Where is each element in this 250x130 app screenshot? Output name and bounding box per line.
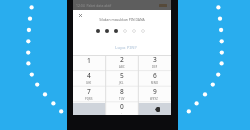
staticText: TUV — [119, 97, 125, 101]
staticText: GHI — [86, 81, 92, 85]
button[interactable]: Lupa PIN? — [112, 44, 140, 52]
staticText: 12:04 Paket data aktif — [76, 3, 112, 8]
staticText: + — [121, 112, 123, 114]
staticText: 9 — [153, 87, 157, 96]
staticText: 7 — [87, 87, 91, 96]
button[interactable]: 5 — [105, 71, 138, 87]
button[interactable]: 3 — [138, 55, 171, 71]
button[interactable]: 2 — [105, 55, 138, 71]
staticText: 8 — [120, 87, 124, 96]
staticText: WXYZ — [150, 97, 159, 101]
button[interactable]: Backspace — [138, 103, 171, 115]
button[interactable]: 6 — [138, 71, 171, 87]
staticText: 3 — [153, 55, 157, 64]
button[interactable]: 9 — [138, 87, 171, 103]
staticText: 5 — [120, 71, 124, 80]
staticText: 2 — [120, 55, 124, 64]
staticText: DEF — [152, 65, 158, 69]
button[interactable]: 0 — [105, 103, 138, 115]
staticText: Lupa PIN? — [115, 45, 137, 51]
button[interactable]: 1 — [73, 55, 105, 71]
button[interactable]: 7 — [73, 87, 105, 103]
button[interactable]: 4 — [73, 71, 105, 87]
staticText: 4 — [87, 71, 91, 80]
staticText: PQRS — [85, 97, 93, 101]
button[interactable]: 8 — [105, 87, 138, 103]
button[interactable]: Close — [76, 11, 85, 20]
staticText: 6 — [153, 71, 157, 80]
staticText: ABC — [119, 65, 125, 69]
staticText: JKL — [119, 81, 124, 85]
staticText: Silakan masukkan PIN DANA — [99, 17, 145, 22]
staticText: 1 — [87, 56, 91, 65]
staticText: 0 — [120, 102, 124, 111]
staticText: MNO — [151, 81, 159, 85]
